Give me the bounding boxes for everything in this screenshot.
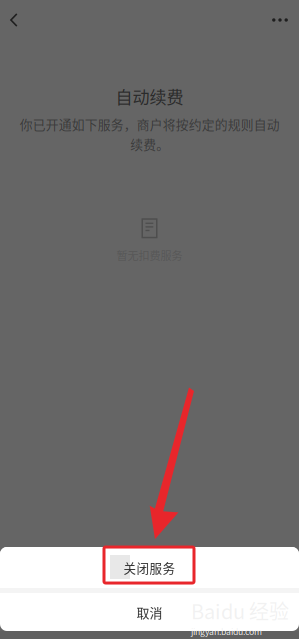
- staticText: Baidu 经验: [191, 596, 289, 625]
- staticText: 取消: [136, 603, 162, 621]
- staticText: jingyan.baidu.com: [191, 625, 262, 637]
- staticText: 关闭服务: [123, 558, 175, 576]
- button[interactable]: 关闭服务: [0, 547, 299, 588]
- button[interactable]: 取消: [0, 593, 299, 631]
- staticText: 暂无扣费服务: [116, 247, 182, 263]
- button[interactable]: 更多: [265, 0, 295, 40]
- staticText: 你已开通如下服务，商户将按约定的规则自动续费。: [19, 115, 279, 153]
- staticText: 自动续费: [115, 84, 183, 109]
- button[interactable]: 返回: [0, 0, 28, 40]
